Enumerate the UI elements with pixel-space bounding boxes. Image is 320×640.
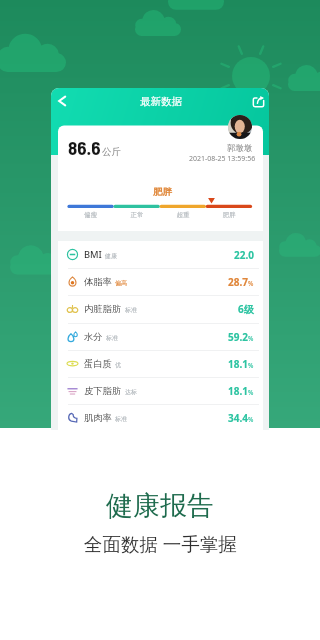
staticText: 水分: [84, 331, 103, 343]
button[interactable]: 水分: [58, 323, 263, 350]
button[interactable]: Back: [52, 91, 72, 111]
staticText: %: [248, 334, 254, 343]
staticText: 偏瘦: [67, 211, 114, 219]
staticText: %: [248, 361, 254, 370]
staticText: 标准: [125, 306, 137, 314]
staticText: 内脏脂肪: [84, 303, 122, 315]
staticText: 18.1: [228, 384, 248, 398]
staticText: 6级: [238, 302, 254, 316]
staticText: %: [248, 388, 254, 397]
staticText: 最新数据: [140, 95, 182, 108]
staticText: 肥胖: [206, 211, 252, 219]
button[interactable]: 蛋白质: [58, 350, 263, 377]
staticText: 59.2: [228, 330, 248, 344]
button[interactable]: 皮下脂肪: [58, 377, 263, 404]
staticText: 肌肉率: [84, 412, 112, 424]
staticText: 公斤: [102, 146, 121, 158]
staticText: 皮下脂肪: [84, 385, 122, 397]
staticText: 22.0: [234, 248, 254, 262]
staticText: 18.1: [228, 357, 248, 371]
staticText: 肥胖: [153, 186, 172, 198]
button[interactable]: BMI: [58, 241, 263, 268]
staticText: 健康: [105, 252, 117, 260]
button[interactable]: 体脂率: [58, 268, 263, 295]
staticText: 郭墩墩: [227, 143, 253, 154]
staticText: BMI: [84, 248, 102, 261]
staticText: %: [248, 415, 254, 424]
button[interactable]: 肌肉率: [58, 404, 263, 431]
staticText: 体脂率: [84, 276, 112, 288]
staticText: 86.6: [68, 136, 101, 159]
staticText: 达标: [125, 388, 137, 396]
staticText: 标准: [106, 334, 118, 342]
staticText: 2021-08-25 13:59:56: [189, 154, 256, 164]
staticText: 28.7: [228, 275, 248, 289]
staticText: 标准: [115, 415, 127, 423]
staticText: 偏高: [115, 279, 127, 287]
button[interactable]: Share: [253, 96, 264, 107]
staticText: 全面数据 一手掌握: [84, 531, 237, 556]
staticText: 蛋白质: [84, 358, 112, 370]
button[interactable]: 内脏脂肪: [58, 295, 263, 322]
staticText: 优: [115, 361, 121, 369]
staticText: 正常: [114, 211, 160, 219]
staticText: %: [248, 279, 254, 288]
staticText: 34.4: [228, 411, 248, 425]
staticText: 健康报告: [106, 489, 214, 523]
staticText: 超重: [160, 211, 206, 219]
